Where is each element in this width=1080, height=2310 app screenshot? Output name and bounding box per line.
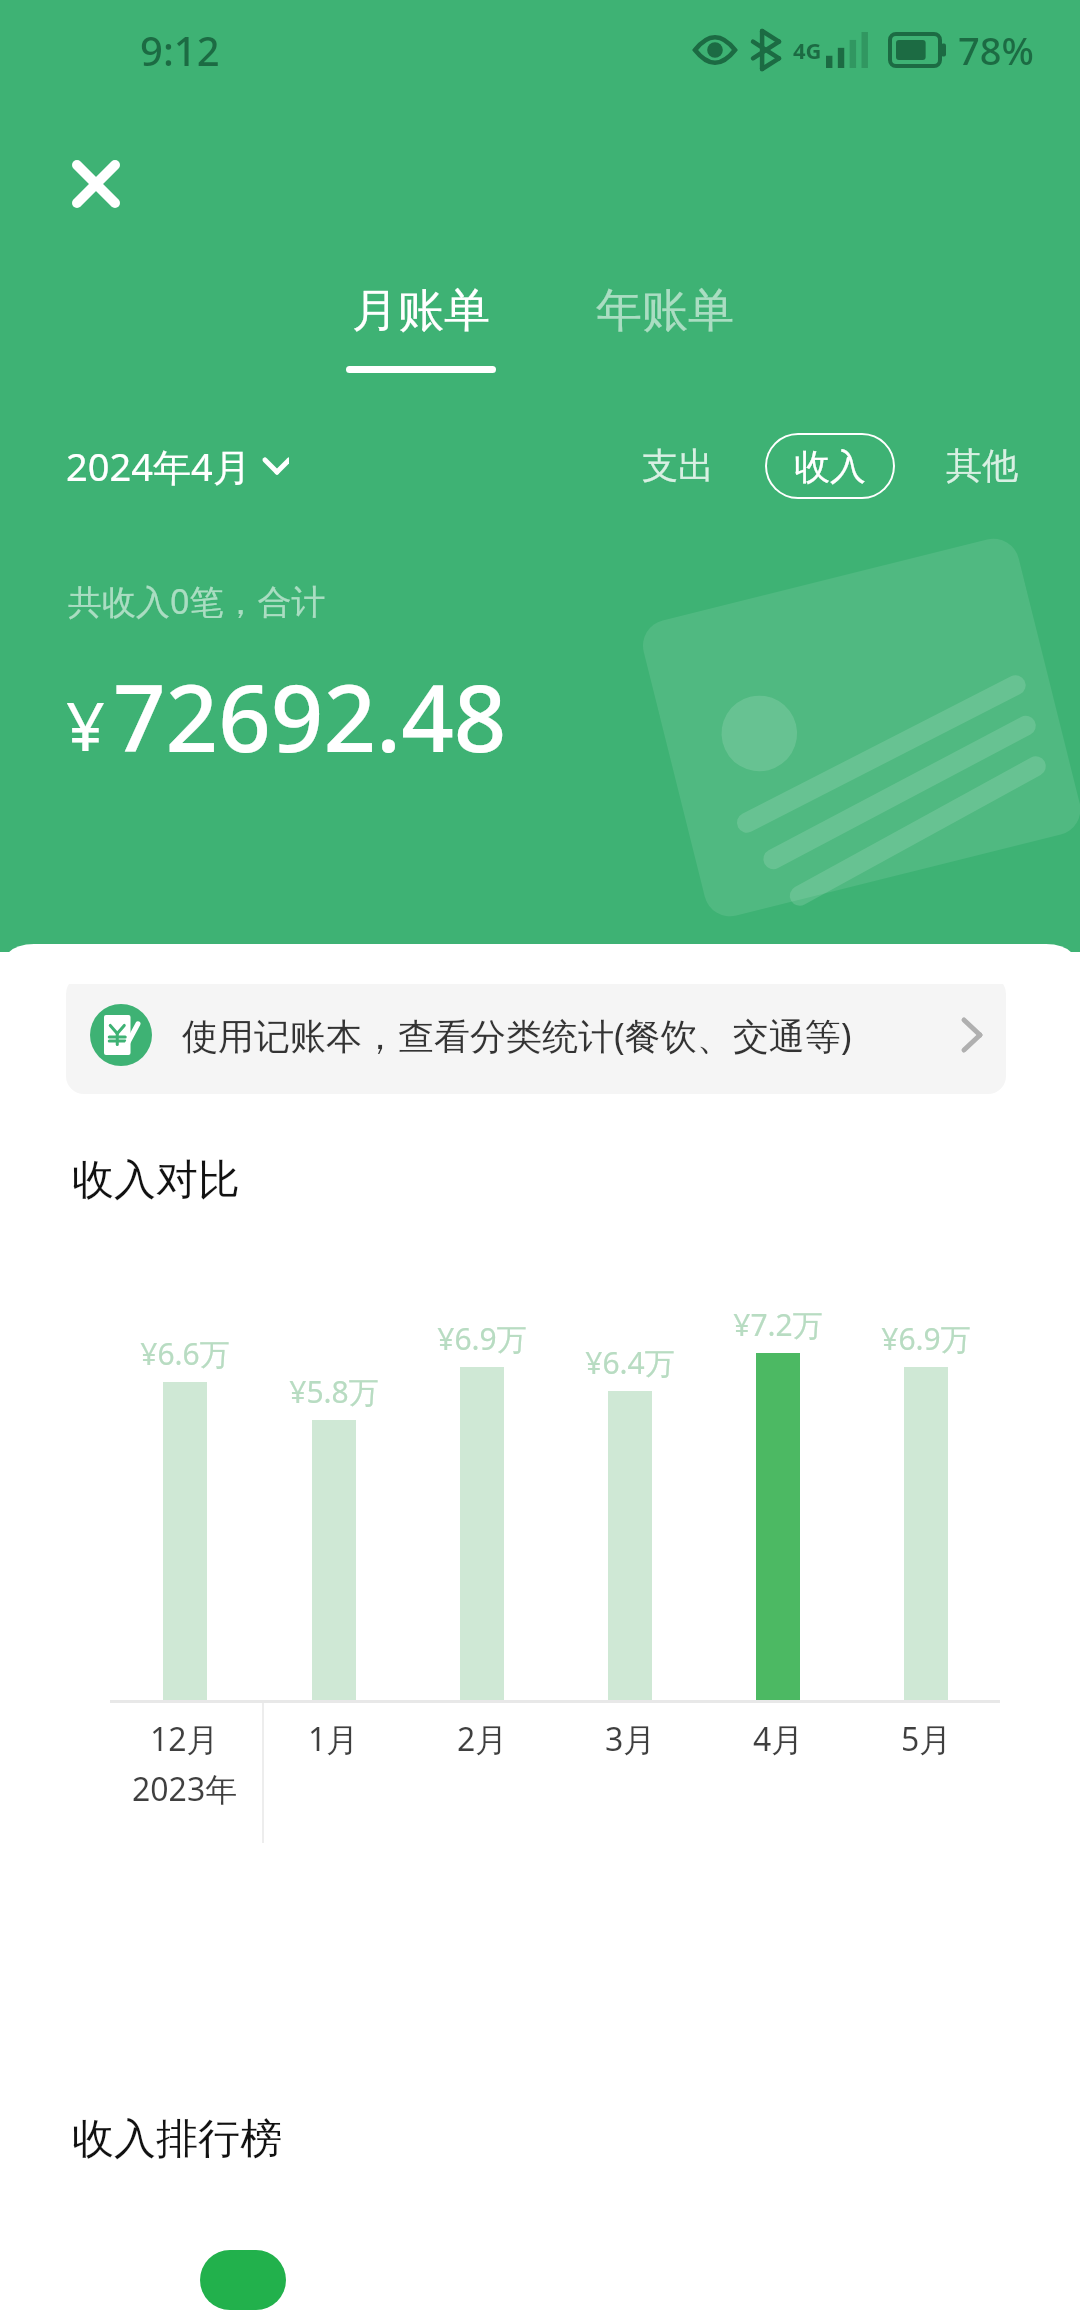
staticText: 年账单 <box>596 282 734 340</box>
staticText: 12月 <box>150 1717 219 1761</box>
staticText: 2023年 <box>132 1767 238 1811</box>
button[interactable]: 年账单 <box>576 276 754 379</box>
staticText: 2月 <box>457 1717 508 1761</box>
staticText: ¥7.2万 <box>733 1304 823 1345</box>
button[interactable]: 使用记账本，查看分类统计(餐饮、交通等) <box>66 976 1006 1094</box>
staticText: 78% <box>958 24 1034 76</box>
staticText: 5月 <box>901 1717 952 1761</box>
button[interactable]: Close <box>42 130 150 238</box>
staticText: ¥6.4万 <box>585 1342 675 1383</box>
button[interactable]: 其他 <box>936 431 1028 500</box>
staticText: ¥6.9万 <box>881 1318 971 1359</box>
staticText: 4G <box>793 35 822 65</box>
button[interactable]: 支出 <box>632 431 724 500</box>
staticText: 使用记账本，查看分类统计(餐饮、交通等) <box>182 1011 852 1060</box>
staticText: 其他 <box>946 443 1018 488</box>
staticText: 月账单 <box>352 282 490 340</box>
staticText: 共收入0笔，合计 <box>68 578 326 624</box>
staticText: ¥6.6万 <box>140 1333 230 1374</box>
button[interactable]: 2024年4月 <box>66 432 289 500</box>
staticText: 4月 <box>753 1717 804 1761</box>
staticText: 1月 <box>308 1717 359 1761</box>
staticText: 72692.48 <box>113 654 507 779</box>
button[interactable]: 收入 <box>764 432 896 500</box>
staticText: 9:12 <box>140 23 220 77</box>
staticText: 3月 <box>605 1717 656 1761</box>
staticText: 收入对比 <box>72 1154 240 1207</box>
staticText: ¥6.9万 <box>437 1318 527 1359</box>
staticText: 2024年4月 <box>66 440 251 492</box>
staticText: ¥ <box>66 678 105 771</box>
staticText: 收入排行榜 <box>72 2113 282 2166</box>
staticText: 支出 <box>642 443 714 488</box>
staticText: 收入 <box>794 444 866 489</box>
staticText: ¥5.8万 <box>289 1371 379 1412</box>
button[interactable]: 月账单 <box>326 276 516 379</box>
